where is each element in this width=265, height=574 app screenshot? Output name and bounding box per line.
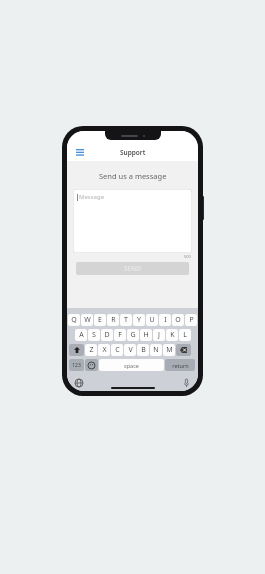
staticText: T (124, 315, 128, 325)
button[interactable]: key (176, 344, 191, 356)
button[interactable]: space (99, 359, 164, 371)
staticText: return (172, 362, 189, 369)
staticText: X (102, 345, 107, 355)
button[interactable]: U (146, 314, 158, 326)
staticText: G (130, 330, 136, 340)
button[interactable]: Message (73, 189, 192, 253)
staticText: V (128, 345, 133, 355)
button[interactable]: F (114, 329, 126, 341)
button[interactable]: key (85, 359, 98, 371)
button[interactable]: D (101, 329, 113, 341)
button[interactable]: R (107, 314, 119, 326)
button[interactable]: C (111, 344, 123, 356)
staticText: U (149, 315, 155, 325)
staticText: J (158, 330, 160, 340)
staticText: W (84, 315, 91, 325)
staticText: A (79, 330, 84, 340)
staticText: Send us a message (99, 171, 167, 181)
button[interactable]: B (137, 344, 149, 356)
button[interactable]: I (159, 314, 171, 326)
staticText: Z (89, 345, 94, 355)
button[interactable]: A (75, 329, 87, 341)
button[interactable]: Change language (73, 377, 85, 389)
button[interactable]: X (98, 344, 110, 356)
staticText: R (111, 315, 116, 325)
button[interactable]: H (140, 329, 152, 341)
staticText: Q (71, 315, 77, 325)
staticText: SEND (124, 264, 141, 273)
button[interactable]: O (172, 314, 184, 326)
button[interactable]: 123 (69, 359, 84, 371)
staticText: F (118, 330, 122, 340)
staticText: space (124, 362, 139, 369)
staticText: S (92, 330, 96, 340)
button[interactable]: Dictate (180, 377, 192, 389)
button[interactable]: key (69, 344, 84, 356)
staticText: P (189, 315, 194, 325)
staticText: O (175, 315, 181, 325)
staticText: Y (137, 315, 141, 325)
staticText: C (115, 345, 120, 355)
button[interactable]: M (163, 344, 175, 356)
button[interactable]: Menu (74, 147, 86, 157)
staticText: Message (79, 193, 105, 201)
staticText: N (153, 345, 159, 355)
button[interactable]: S (88, 329, 100, 341)
staticText: K (170, 330, 175, 340)
button[interactable]: J (153, 329, 165, 341)
staticText: H (143, 330, 149, 340)
button[interactable]: T (120, 314, 132, 326)
staticText: M (166, 345, 173, 355)
button[interactable]: Y (133, 314, 145, 326)
staticText: I (164, 315, 167, 325)
button[interactable]: L (179, 329, 191, 341)
staticText: E (98, 315, 102, 325)
staticText: B (141, 345, 146, 355)
staticText: 123 (72, 362, 81, 369)
button[interactable]: V (124, 344, 136, 356)
button[interactable]: Q (68, 314, 80, 326)
button[interactable]: P (185, 314, 197, 326)
staticText: 500 (184, 254, 191, 259)
button[interactable]: K (166, 329, 178, 341)
button[interactable]: E (94, 314, 106, 326)
button[interactable]: N (150, 344, 162, 356)
button[interactable]: Z (85, 344, 97, 356)
button[interactable]: W (81, 314, 93, 326)
staticText: D (104, 330, 110, 340)
button[interactable]: G (127, 329, 139, 341)
staticText: L (183, 330, 187, 340)
staticText: Support (120, 148, 146, 157)
button[interactable]: return (165, 359, 195, 371)
